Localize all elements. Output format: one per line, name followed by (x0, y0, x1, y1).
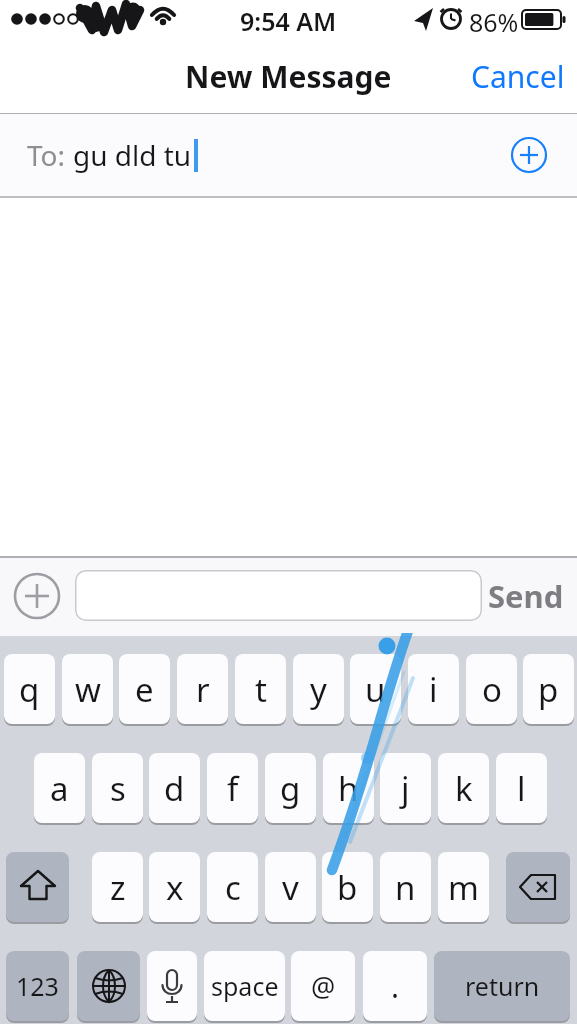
button[interactable]: To: (0, 114, 577, 196)
button[interactable]: z (92, 852, 143, 922)
staticText: b (337, 865, 358, 910)
staticText: m (448, 865, 479, 910)
staticText: o (482, 667, 502, 712)
button[interactable] (506, 852, 570, 922)
staticText: 9:54 AM (240, 4, 337, 38)
button[interactable]: Cancel (466, 51, 570, 102)
staticText: v (282, 865, 299, 910)
button[interactable]: e (119, 654, 170, 724)
button[interactable]: t (235, 654, 286, 724)
staticText: y (310, 667, 327, 712)
button[interactable]: x (149, 852, 200, 922)
button[interactable]: f (207, 753, 258, 823)
button[interactable]: return (434, 951, 570, 1021)
button[interactable]: . (363, 951, 427, 1021)
staticText: New Message (185, 56, 392, 97)
staticText: u (365, 667, 386, 712)
staticText: j (401, 766, 410, 811)
staticText: space (211, 969, 279, 1003)
button[interactable]: i (408, 654, 459, 724)
staticText: 123 (16, 969, 59, 1003)
staticText: k (455, 766, 473, 811)
staticText: c (225, 865, 241, 910)
button[interactable] (75, 570, 482, 621)
staticText: @ (311, 968, 336, 1005)
staticText: q (19, 667, 40, 712)
button[interactable]: b (322, 852, 373, 922)
staticText: Cancel (471, 56, 565, 97)
button[interactable]: h (323, 753, 374, 823)
button[interactable] (13, 572, 61, 620)
staticText: return (465, 969, 540, 1003)
staticText: w (75, 667, 101, 712)
button[interactable]: c (207, 852, 258, 922)
button[interactable]: Send (488, 575, 564, 617)
button[interactable] (510, 136, 548, 174)
button[interactable]: w (62, 654, 113, 724)
button[interactable]: 123 (6, 951, 69, 1021)
button[interactable]: q (4, 654, 55, 724)
staticText: p (538, 667, 559, 712)
staticText: x (166, 865, 184, 910)
staticText: d (164, 766, 185, 811)
staticText: e (135, 667, 154, 712)
button[interactable]: g (265, 753, 316, 823)
button[interactable]: l (496, 753, 547, 823)
button[interactable]: space (204, 951, 285, 1021)
button[interactable]: m (438, 852, 489, 922)
staticText: z (110, 865, 126, 910)
staticText: i (429, 667, 438, 712)
button[interactable] (77, 951, 140, 1021)
button[interactable]: d (149, 753, 200, 823)
button[interactable]: p (523, 654, 574, 724)
staticText: l (517, 766, 526, 811)
staticText: To: (27, 136, 73, 174)
staticText: 86% (469, 5, 519, 39)
button[interactable]: n (380, 852, 431, 922)
button[interactable]: j (380, 753, 431, 823)
staticText: gu dld tu (73, 136, 192, 174)
button[interactable]: r (177, 654, 228, 724)
button[interactable] (6, 852, 69, 922)
button[interactable]: v (265, 852, 316, 922)
staticText: n (395, 865, 416, 910)
staticText: s (110, 766, 126, 811)
button[interactable]: k (438, 753, 489, 823)
button[interactable] (147, 951, 197, 1021)
button[interactable]: u (350, 654, 401, 724)
staticText: r (196, 667, 210, 712)
button[interactable]: @ (291, 951, 355, 1021)
staticText: f (227, 766, 239, 811)
staticText: a (50, 766, 69, 811)
staticText: t (255, 667, 267, 712)
button[interactable]: s (92, 753, 143, 823)
button[interactable]: y (293, 654, 344, 724)
button[interactable]: a (34, 753, 85, 823)
staticText: . (391, 966, 400, 1007)
staticText: g (280, 766, 301, 811)
staticText: Send (488, 575, 564, 617)
button[interactable]: o (466, 654, 517, 724)
staticText: h (338, 766, 359, 811)
